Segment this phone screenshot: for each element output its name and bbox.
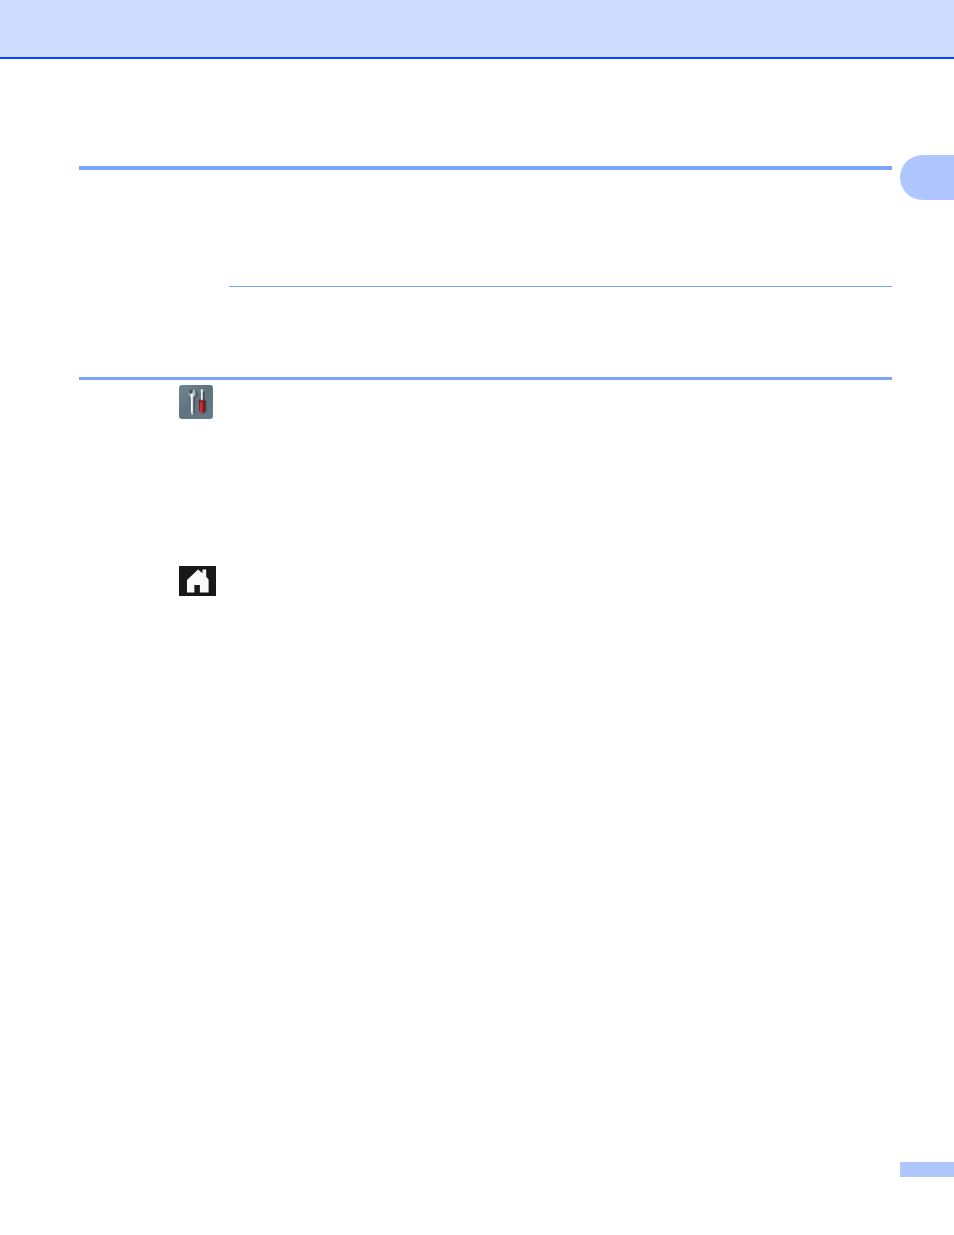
button[interactable]: Chapter tab (900, 155, 954, 200)
button[interactable]: Home (179, 566, 216, 596)
button[interactable]: Tools (179, 385, 213, 419)
